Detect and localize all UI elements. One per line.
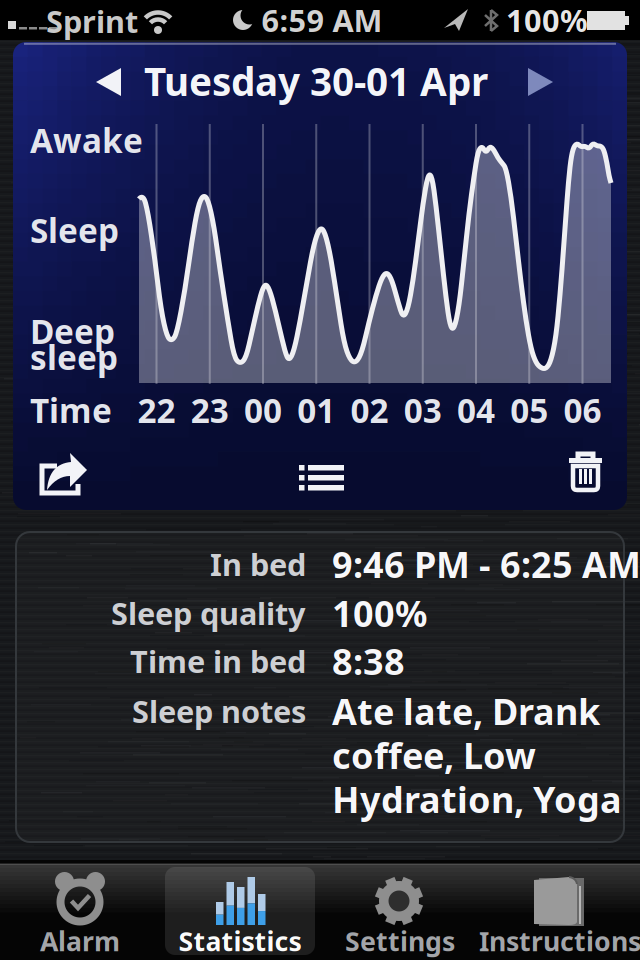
staticText: Statistics (178, 923, 301, 959)
staticText: coffee, Low (332, 731, 536, 779)
button[interactable]: Sleep notes list (289, 453, 353, 501)
staticText: 8:38 (332, 637, 405, 685)
staticText: 05 (510, 388, 548, 432)
staticText: Tuesday 30-01 Apr (144, 55, 488, 107)
staticText: 6:59 AM (261, 0, 382, 40)
staticText: Sleep (30, 208, 119, 252)
staticText: Sleep quality (111, 593, 306, 633)
button[interactable]: Instructions (484, 866, 636, 958)
staticText: Ate late, Drank (332, 687, 600, 735)
staticText: Settings (345, 923, 455, 959)
button[interactable]: Share (27, 450, 91, 506)
staticText: Awake (30, 118, 143, 162)
staticText: 01 (297, 388, 335, 432)
staticText: 9:46 PM - 6:25 AM (332, 540, 640, 588)
staticText: sleep (30, 335, 118, 379)
staticText: 02 (350, 388, 388, 432)
staticText: Deep (30, 309, 115, 353)
staticText: 100% (506, 0, 588, 40)
button[interactable]: Statistics (164, 866, 316, 958)
staticText: Time in bed (130, 641, 306, 681)
staticText: 03 (404, 388, 442, 432)
staticText: 100% (332, 589, 427, 637)
staticText: In bed (210, 544, 306, 584)
button[interactable]: Settings (324, 866, 476, 958)
staticText: Hydration, Yoga (332, 775, 622, 823)
button[interactable]: Next night (513, 58, 561, 106)
button[interactable]: Alarm (4, 866, 156, 958)
staticText: Sprint (46, 1, 138, 41)
staticText: 04 (457, 388, 495, 432)
staticText: Sleep notes (132, 691, 306, 731)
button[interactable]: Previous night (88, 58, 136, 106)
button[interactable]: Delete night (557, 442, 613, 498)
staticText: 22 (137, 388, 175, 432)
staticText: Alarm (40, 923, 120, 959)
staticText: Instructions (479, 923, 640, 959)
staticText: 23 (191, 388, 229, 432)
staticText: Time (30, 388, 112, 432)
staticText: 00 (244, 388, 282, 432)
staticText: 06 (563, 388, 601, 432)
